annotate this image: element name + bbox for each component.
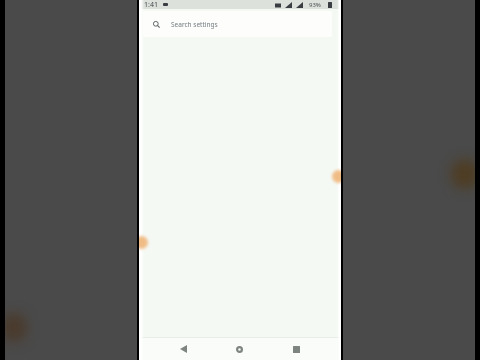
staticText: 1:41 [144, 0, 158, 9]
button[interactable]: Recents [268, 338, 325, 360]
button[interactable]: Back [155, 338, 211, 360]
button[interactable]: Search settings [143, 11, 332, 37]
button[interactable]: Home [211, 338, 268, 360]
staticText: 93% [309, 1, 321, 9]
staticText: Search settings [171, 20, 218, 29]
